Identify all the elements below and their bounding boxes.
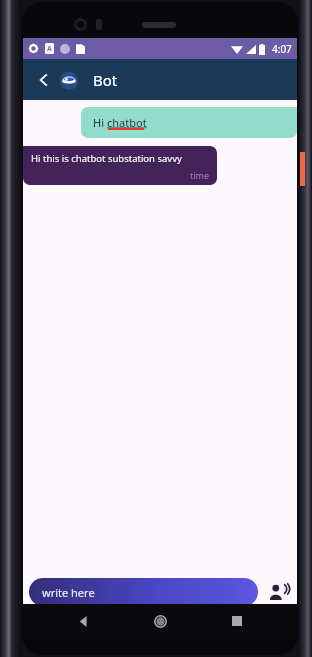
staticText: 4:07 — [272, 42, 292, 56]
staticText: Bot — [93, 70, 118, 90]
button[interactable]: Hi — [81, 107, 297, 138]
button[interactable]: Back — [31, 67, 57, 93]
staticText: Hi this is chatbot substation savvy — [31, 152, 182, 165]
staticText: chatbot — [107, 115, 147, 130]
button[interactable]: Home — [143, 604, 177, 638]
button[interactable]: Back — [66, 604, 100, 638]
button[interactable]: Recent apps — [220, 604, 254, 638]
staticText: Hi — [93, 115, 107, 130]
button[interactable]: Voice input — [265, 579, 291, 605]
button[interactable]: Hi this is chatbot substation savvy — [23, 146, 217, 185]
staticText: A — [47, 44, 52, 54]
button[interactable]: write here — [29, 578, 258, 606]
staticText: write here — [42, 585, 95, 600]
staticText: time — [31, 169, 209, 181]
